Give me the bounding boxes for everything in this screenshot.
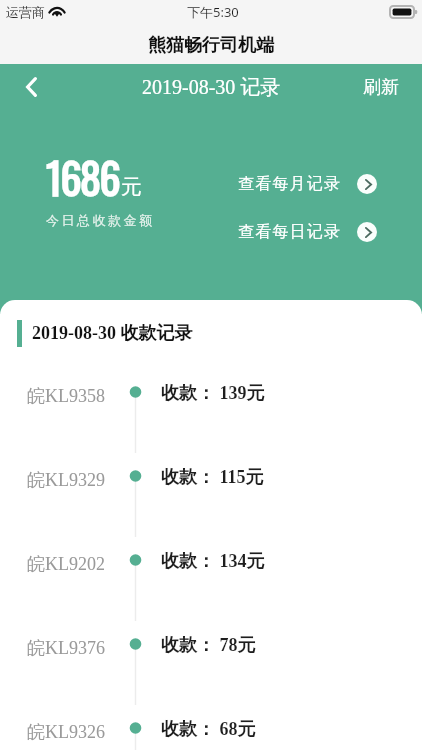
staticText: 收款： 134元	[161, 550, 265, 573]
button[interactable]: 查看每月记录	[238, 174, 377, 194]
staticText: 收款： 115元	[161, 466, 264, 489]
staticText: 皖KL9202	[27, 553, 105, 576]
staticText: 皖KL9329	[27, 469, 105, 492]
staticText: 2019-08-30 收款记录	[32, 322, 193, 345]
button[interactable]: 皖KL9202	[0, 545, 422, 629]
staticText: 皖KL9376	[27, 637, 105, 660]
button[interactable]: 皖KL9358	[0, 377, 422, 461]
staticText: 运营商	[6, 4, 45, 20]
staticText: 刷新	[363, 76, 399, 99]
staticText: 查看每月记录	[238, 174, 342, 194]
staticText: 1686	[46, 146, 120, 208]
staticText: 熊猫畅行司机端	[148, 34, 274, 57]
staticText: 今日总收款金额	[46, 212, 155, 228]
staticText: 收款： 68元	[161, 718, 256, 741]
staticText: 元	[121, 174, 142, 200]
staticText: 收款： 78元	[161, 634, 256, 657]
staticText: 皖KL9358	[27, 385, 105, 408]
staticText: 查看每日记录	[238, 222, 342, 242]
button[interactable]: 皖KL9376	[0, 629, 422, 713]
button[interactable]: 皖KL9326	[0, 713, 422, 750]
staticText: 2019-08-30 记录	[142, 75, 281, 100]
staticText: 收款： 139元	[161, 382, 265, 405]
staticText: 下午5:30	[187, 3, 239, 21]
button[interactable]: 皖KL9329	[0, 461, 422, 545]
staticText: 皖KL9326	[27, 721, 105, 744]
button[interactable]: Back	[14, 70, 48, 104]
button[interactable]: 查看每日记录	[238, 222, 377, 242]
button[interactable]: 刷新	[363, 76, 399, 99]
